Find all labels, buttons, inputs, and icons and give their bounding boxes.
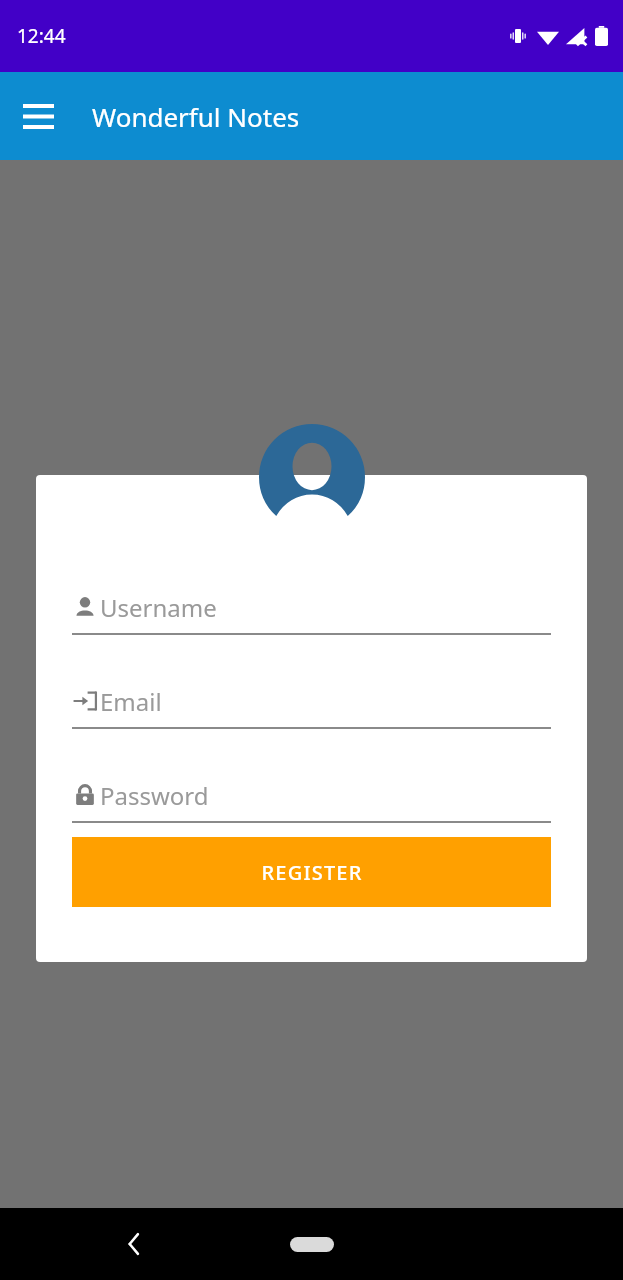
button[interactable]: Home bbox=[280, 1224, 344, 1264]
staticText: Password bbox=[100, 779, 209, 812]
staticText: Username bbox=[100, 591, 217, 624]
button[interactable]: Back bbox=[110, 1220, 158, 1268]
staticText: 12:44 bbox=[17, 23, 66, 49]
button[interactable]: Password bbox=[72, 776, 551, 823]
staticText: REGISTER bbox=[261, 859, 363, 886]
button[interactable]: Open navigation menu bbox=[14, 92, 62, 140]
button[interactable]: Username bbox=[72, 588, 551, 635]
button[interactable]: REGISTER bbox=[72, 837, 551, 907]
staticText: Wonderful Notes bbox=[92, 99, 300, 134]
staticText: Email bbox=[100, 685, 162, 718]
button[interactable]: Email bbox=[72, 682, 551, 729]
